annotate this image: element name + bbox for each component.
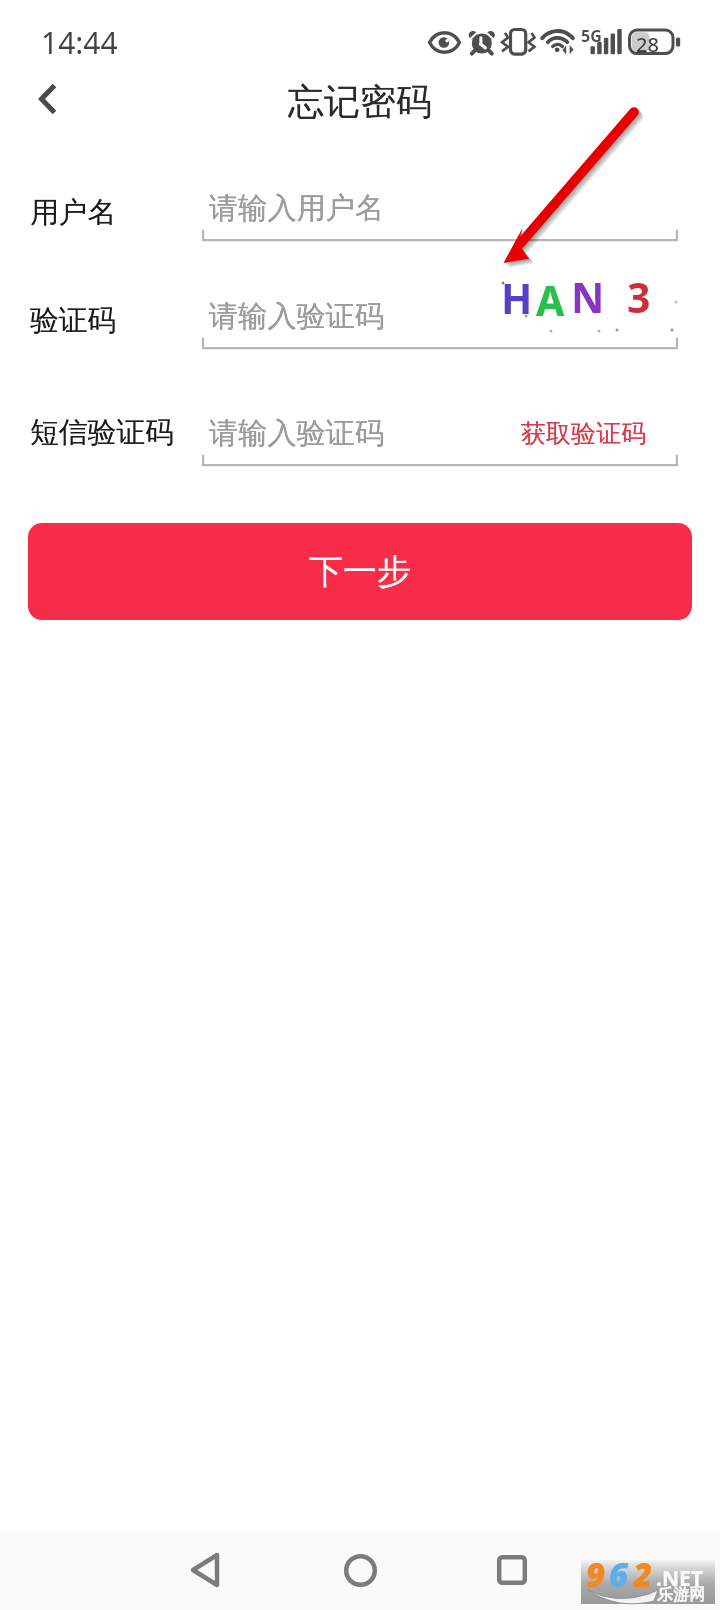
staticText: 请输入用户名 [209,190,385,227]
staticText: 2 [633,1552,653,1596]
staticText: A [536,272,565,328]
staticText: 请输入验证码 [209,298,385,335]
staticText: N [571,269,605,325]
staticText: H [501,270,533,326]
button[interactable]: 获取验证码 [509,408,658,459]
staticText: 乐游网 [657,1585,705,1605]
staticText: 请输入验证码 [209,415,385,452]
staticText: 5G [581,25,602,47]
button[interactable]: 962.NET 乐游网 [581,1560,715,1604]
staticText: 14:44 [41,22,118,63]
staticText: 用户名 [30,194,117,230]
staticText: 短信验证码 [30,414,174,450]
staticText: 用户名 [30,194,117,230]
button[interactable]: 下一步 [28,523,692,620]
staticText: 下一步 [309,550,411,593]
staticText: 忘记密码 [288,79,432,124]
staticText: 短信验证码 [30,414,174,450]
staticText: 获取验证码 [521,418,646,449]
staticText: 9 [586,1552,606,1596]
staticText: 验证码 [30,302,117,338]
staticText: 请输入验证码 [209,415,385,452]
staticText: 3 [627,269,651,325]
button[interactable]: Refresh captcha [476,286,676,350]
staticText: 验证码 [30,302,117,338]
button[interactable]: 请输入验证码 [202,403,678,467]
staticText: 请输入用户名 [209,190,385,227]
staticText: 请输入验证码 [209,298,385,335]
button[interactable]: Home [320,1530,400,1610]
button[interactable]: Recents [472,1530,552,1610]
staticText: 6 [609,1552,629,1596]
staticText: 获取验证码 [521,418,646,449]
button[interactable]: Back [165,1530,245,1610]
staticText: 28 [636,31,659,58]
button[interactable]: 请输入验证码 [202,286,678,350]
button[interactable]: Back [9,60,87,138]
staticText: 忘记密码 [288,79,432,124]
button[interactable]: 请输入用户名 [202,178,678,242]
staticText: .NET [656,1564,703,1593]
